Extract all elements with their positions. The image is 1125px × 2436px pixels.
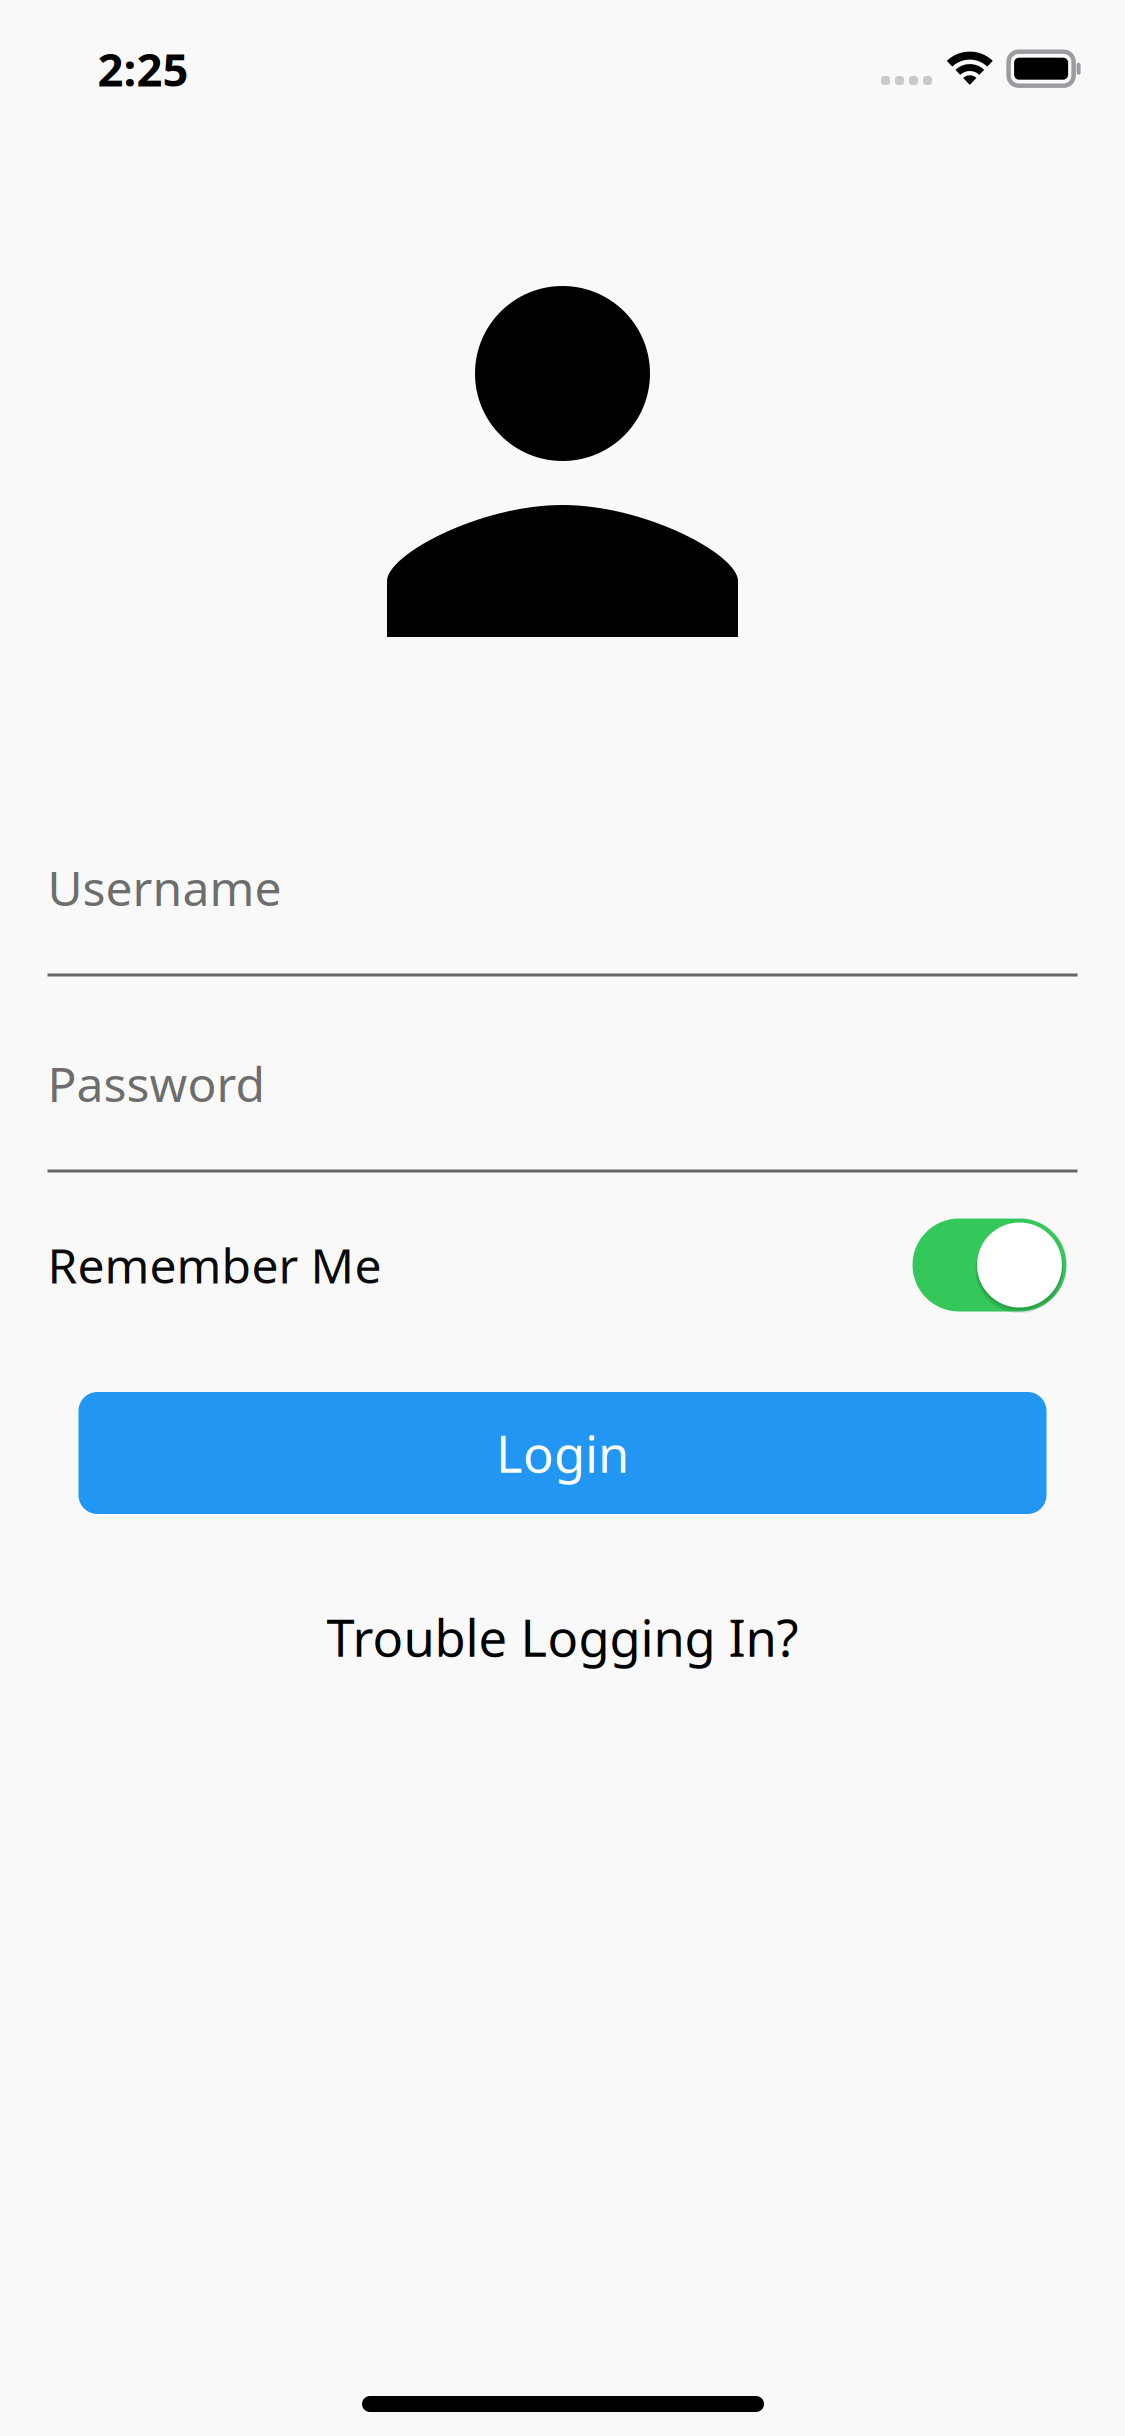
staticText: Username: [47, 856, 281, 919]
button[interactable]: Trouble Logging In?: [302, 1602, 822, 1672]
staticText: Login: [496, 1419, 629, 1487]
staticText: 2:25: [97, 39, 188, 99]
staticText: Trouble Logging In?: [326, 1603, 798, 1671]
button[interactable]: Login: [78, 1392, 1046, 1514]
button[interactable]: Password: [47, 1053, 1077, 1172]
button[interactable]: Username: [47, 857, 1077, 976]
staticText: Password: [47, 1052, 265, 1115]
button[interactable]: Remember Me: [47, 1207, 1077, 1323]
staticText: Remember Me: [47, 1233, 381, 1297]
